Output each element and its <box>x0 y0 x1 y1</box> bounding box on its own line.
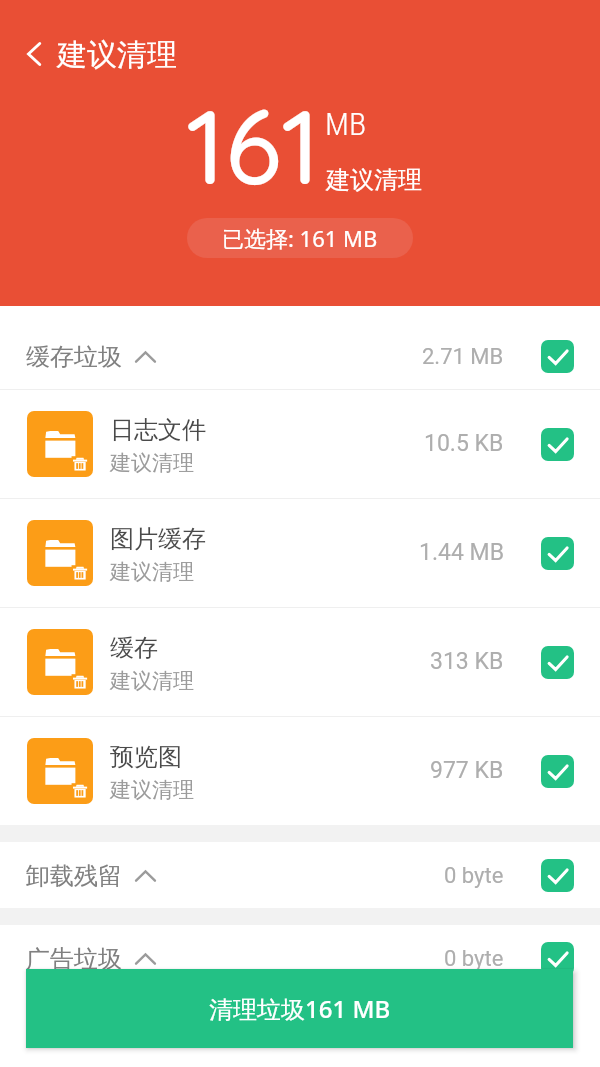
staticText: 10.5 KB <box>424 430 504 457</box>
staticText: 预览图 <box>110 742 182 772</box>
staticText: 0 byte <box>444 946 504 972</box>
staticText: 0 byte <box>444 863 504 889</box>
staticText: 广告垃圾 <box>26 944 122 974</box>
staticText: 建议清理 <box>110 668 194 694</box>
staticText: 卸载残留 <box>26 861 122 891</box>
staticText: 图片缓存 <box>110 524 206 554</box>
button[interactable]: Selected <box>541 428 574 461</box>
staticText: 建议清理 <box>110 777 194 803</box>
staticText: 建议清理 <box>110 559 194 585</box>
staticText: 建议清理 <box>57 36 177 74</box>
staticText: 清理垃圾161 MB <box>209 992 391 1025</box>
staticText: 建议清理 <box>110 450 194 476</box>
button[interactable]: 预览图 <box>0 717 600 825</box>
button[interactable]: 日志文件 <box>0 390 600 498</box>
button[interactable]: 图片缓存 <box>0 499 600 607</box>
button[interactable]: 已选择: 161 MB <box>187 218 413 258</box>
staticText: 已选择: 161 MB <box>222 223 378 253</box>
staticText: 建议清理 <box>326 165 422 195</box>
button[interactable]: Selected <box>541 646 574 679</box>
button[interactable]: 卸载残留 <box>0 842 600 908</box>
staticText: 缓存垃圾 <box>26 342 122 372</box>
staticText: 日志文件 <box>110 415 206 445</box>
staticText: MB <box>325 105 367 143</box>
button[interactable]: Back <box>10 30 58 78</box>
button[interactable]: Selected <box>541 537 574 570</box>
button[interactable]: Selected <box>541 340 574 373</box>
button[interactable]: Selected <box>541 942 574 975</box>
button[interactable]: 清理垃圾161 MB <box>26 969 573 1048</box>
staticText: 缓存 <box>110 633 158 663</box>
button[interactable]: Selected <box>541 755 574 788</box>
staticText: 1.44 MB <box>419 539 504 566</box>
staticText: 977 KB <box>430 757 504 784</box>
staticText: 2.71 MB <box>422 344 504 370</box>
button[interactable]: 广告垃圾 <box>0 925 600 991</box>
staticText: 313 KB <box>430 648 504 675</box>
button[interactable]: 缓存垃圾 <box>0 323 600 389</box>
button[interactable]: Selected <box>541 859 574 892</box>
button[interactable]: 缓存 <box>0 608 600 716</box>
